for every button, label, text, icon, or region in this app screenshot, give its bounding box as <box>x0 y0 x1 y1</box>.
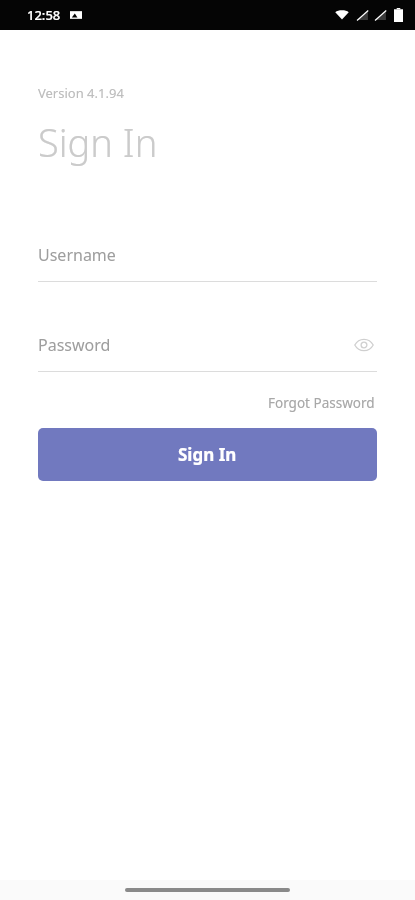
staticText: Forgot Password <box>268 394 375 412</box>
button[interactable]: Sign In <box>38 428 377 481</box>
staticText: Sign In <box>38 116 158 168</box>
button[interactable]: Password <box>38 328 377 362</box>
button[interactable]: Forgot Password <box>266 390 377 416</box>
staticText: Password <box>38 334 111 356</box>
staticText: Version 4.1.94 <box>38 84 124 102</box>
staticText: 12:58 <box>27 6 61 24</box>
staticText: Sign In <box>178 443 237 466</box>
button[interactable]: Username <box>38 238 377 272</box>
button[interactable]: Show password <box>351 332 377 358</box>
staticText: Username <box>38 244 116 266</box>
